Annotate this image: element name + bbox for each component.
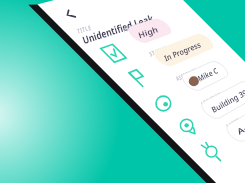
- button[interactable]: [0, 0, 245, 183]
